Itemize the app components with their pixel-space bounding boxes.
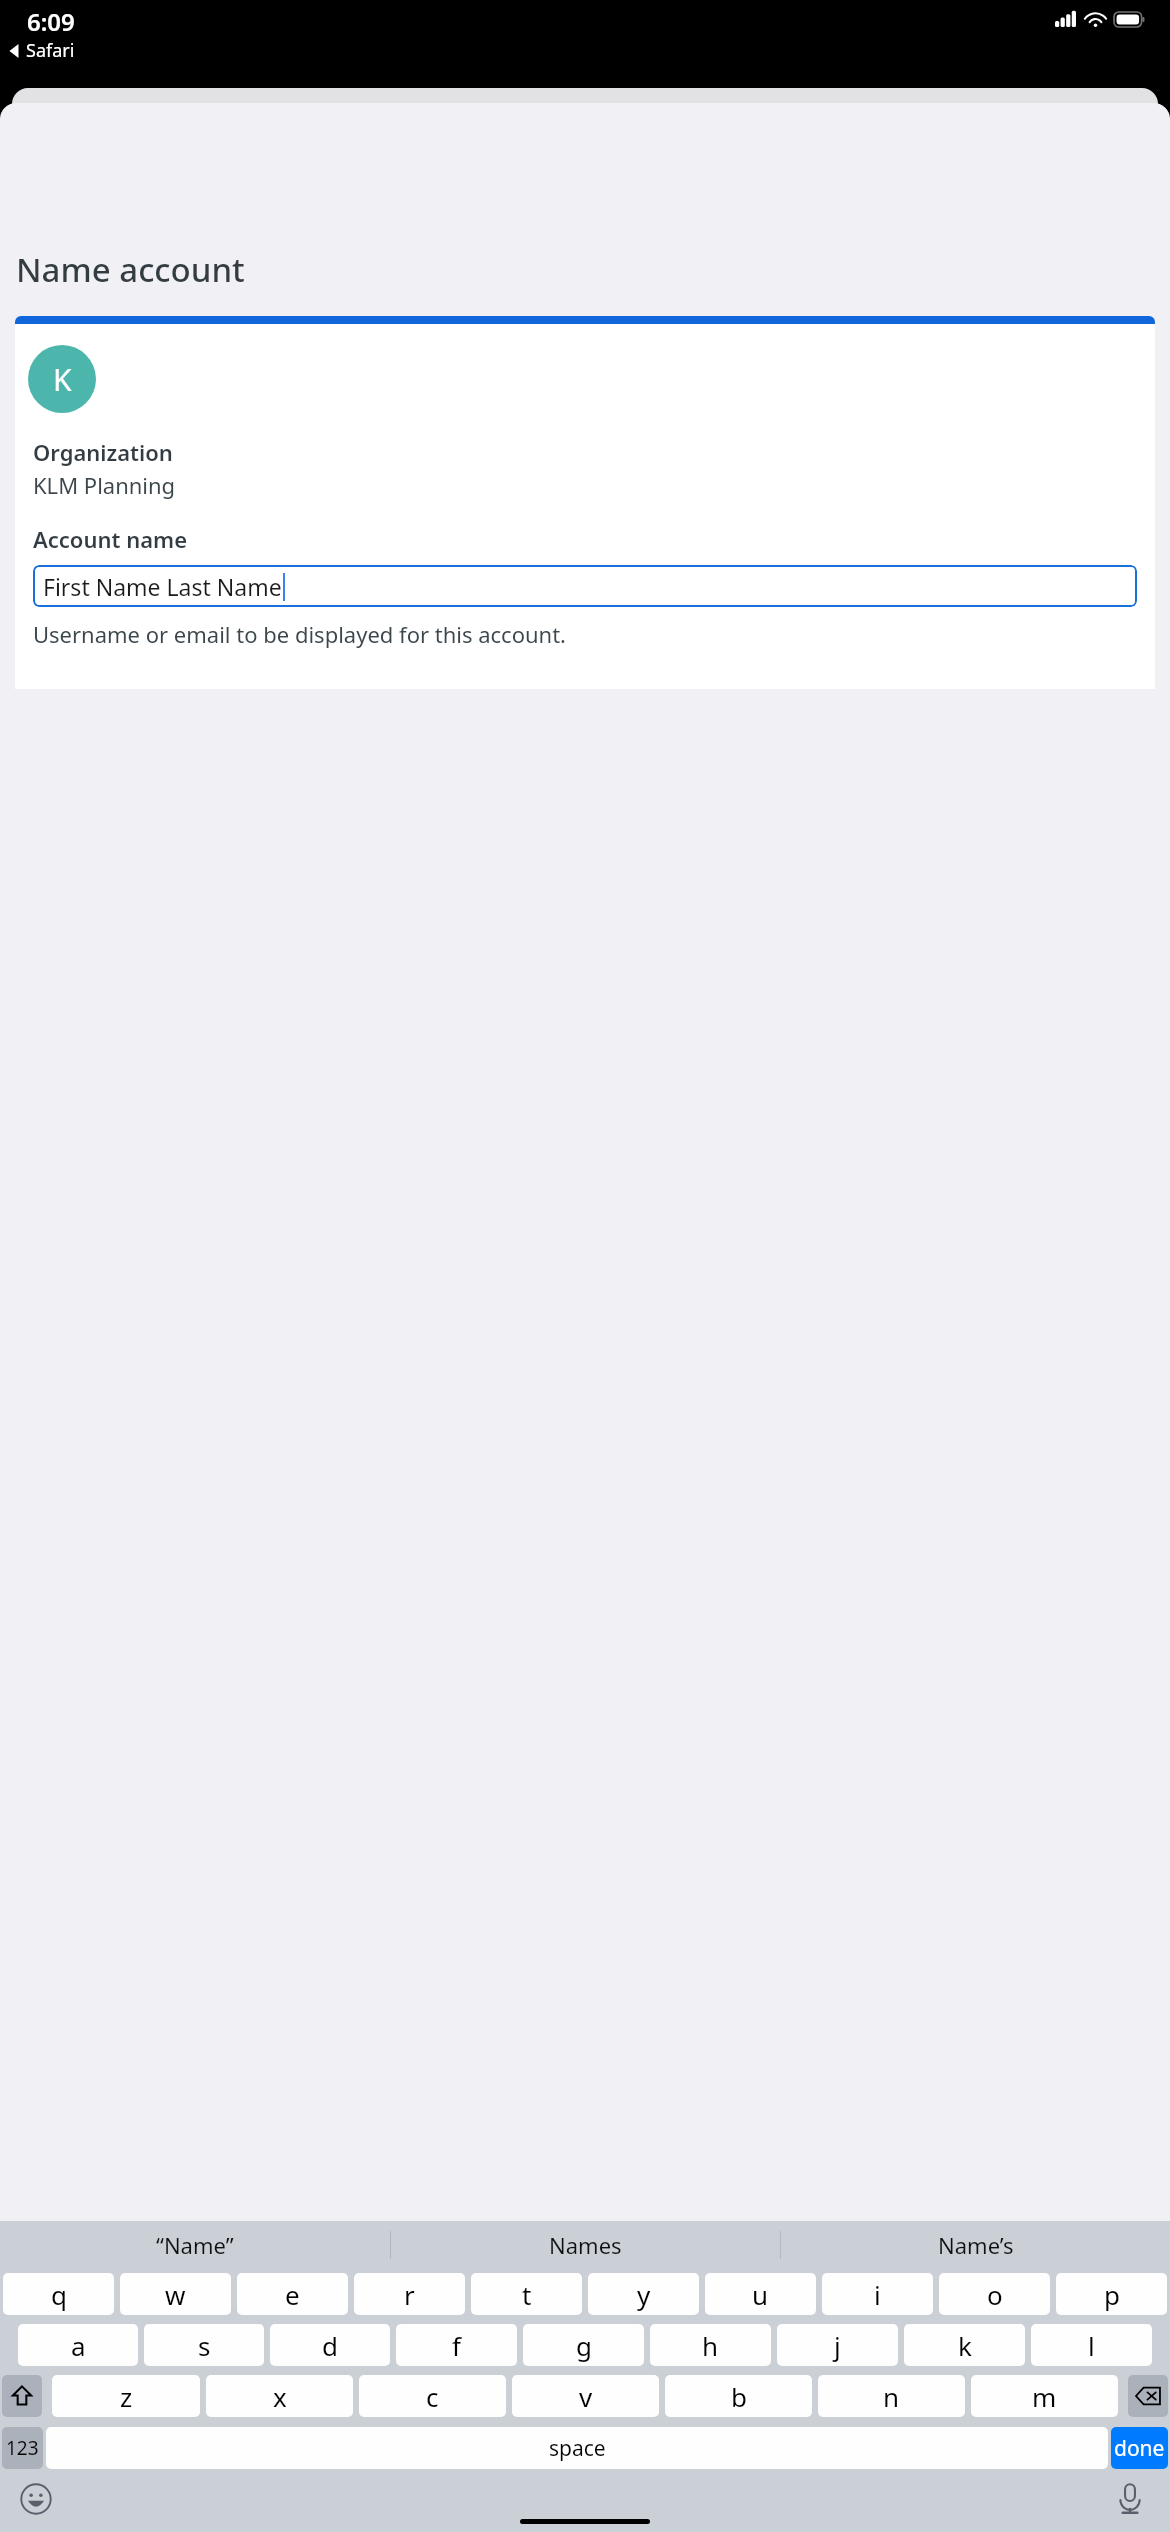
button[interactable]: f	[396, 2324, 517, 2366]
staticText: First Name Last Name	[43, 571, 282, 602]
button[interactable]: z	[52, 2375, 200, 2417]
staticText: Name account	[16, 247, 245, 292]
staticText: c	[426, 2379, 439, 2414]
staticText: q	[51, 2277, 67, 2312]
button[interactable]: q	[3, 2273, 114, 2315]
staticText: i	[874, 2277, 881, 2312]
button[interactable]: Names	[391, 2221, 780, 2269]
staticText: Organization	[33, 437, 173, 467]
staticText: k	[958, 2328, 972, 2363]
button[interactable]: x	[206, 2375, 353, 2417]
staticText: d	[322, 2328, 338, 2363]
staticText: n	[883, 2379, 900, 2414]
button[interactable]: Back to Safari	[8, 38, 75, 63]
button[interactable]: Account avatar	[28, 345, 96, 413]
staticText: j	[834, 2328, 841, 2363]
button[interactable]: l	[1031, 2324, 1152, 2366]
staticText: w	[165, 2277, 186, 2312]
button[interactable]: s	[144, 2324, 264, 2366]
button[interactable]: v	[512, 2375, 659, 2417]
staticText: t	[522, 2277, 532, 2312]
button[interactable]: j	[777, 2324, 898, 2366]
button[interactable]: d	[270, 2324, 390, 2366]
staticText: done	[1114, 2434, 1165, 2463]
button[interactable]: First Name Last Name	[33, 565, 1137, 607]
staticText: h	[702, 2328, 719, 2363]
button[interactable]: n	[818, 2375, 965, 2417]
button[interactable]: c	[359, 2375, 506, 2417]
staticText: v	[579, 2379, 593, 2414]
staticText: x	[273, 2379, 287, 2414]
button[interactable]: h	[650, 2324, 771, 2366]
staticText: g	[576, 2328, 592, 2363]
staticText: p	[1104, 2277, 1120, 2312]
staticText: l	[1088, 2328, 1095, 2363]
staticText: “Name”	[156, 2230, 234, 2260]
staticText: o	[987, 2277, 1003, 2312]
button[interactable]: Shift	[2, 2375, 42, 2417]
button[interactable]: u	[705, 2273, 816, 2315]
staticText: Username or email to be displayed for th…	[33, 619, 567, 649]
staticText: Names	[549, 2230, 622, 2260]
staticText: Account name	[33, 524, 188, 554]
staticText: f	[452, 2328, 461, 2363]
button[interactable]: t	[471, 2273, 582, 2315]
button[interactable]: Backspace	[1128, 2375, 1168, 2417]
button[interactable]: g	[523, 2324, 644, 2366]
button[interactable]: k	[904, 2324, 1025, 2366]
button[interactable]: Emoji	[18, 2481, 54, 2517]
button[interactable]: w	[120, 2273, 231, 2315]
button[interactable]: Name’s	[781, 2221, 1170, 2269]
staticText: Name’s	[938, 2230, 1014, 2260]
staticText: s	[198, 2328, 211, 2363]
button[interactable]: b	[665, 2375, 812, 2417]
staticText: z	[120, 2379, 133, 2414]
button[interactable]: 123	[2, 2427, 43, 2469]
staticText: K	[53, 359, 72, 400]
staticText: 123	[6, 2435, 39, 2461]
button[interactable]: e	[237, 2273, 348, 2315]
staticText: space	[549, 2434, 606, 2463]
staticText: 6:09	[27, 5, 75, 38]
staticText: b	[731, 2379, 747, 2414]
staticText: a	[71, 2328, 86, 2363]
button[interactable]: r	[354, 2273, 465, 2315]
button[interactable]: i	[822, 2273, 933, 2315]
button[interactable]: a	[18, 2324, 138, 2366]
button[interactable]: “Name”	[0, 2221, 390, 2269]
button[interactable]: Dictation	[1112, 2481, 1148, 2517]
staticText: m	[1032, 2379, 1057, 2414]
staticText: y	[637, 2277, 651, 2312]
staticText: Safari	[26, 38, 75, 63]
staticText: KLM Planning	[33, 470, 176, 500]
button[interactable]: space	[46, 2427, 1108, 2469]
button[interactable]: m	[971, 2375, 1118, 2417]
staticText: e	[285, 2277, 300, 2312]
button[interactable]: done	[1111, 2427, 1168, 2469]
button[interactable]: o	[939, 2273, 1050, 2315]
staticText: r	[404, 2277, 415, 2312]
staticText: u	[752, 2277, 769, 2312]
button[interactable]: y	[588, 2273, 699, 2315]
button[interactable]: p	[1056, 2273, 1167, 2315]
